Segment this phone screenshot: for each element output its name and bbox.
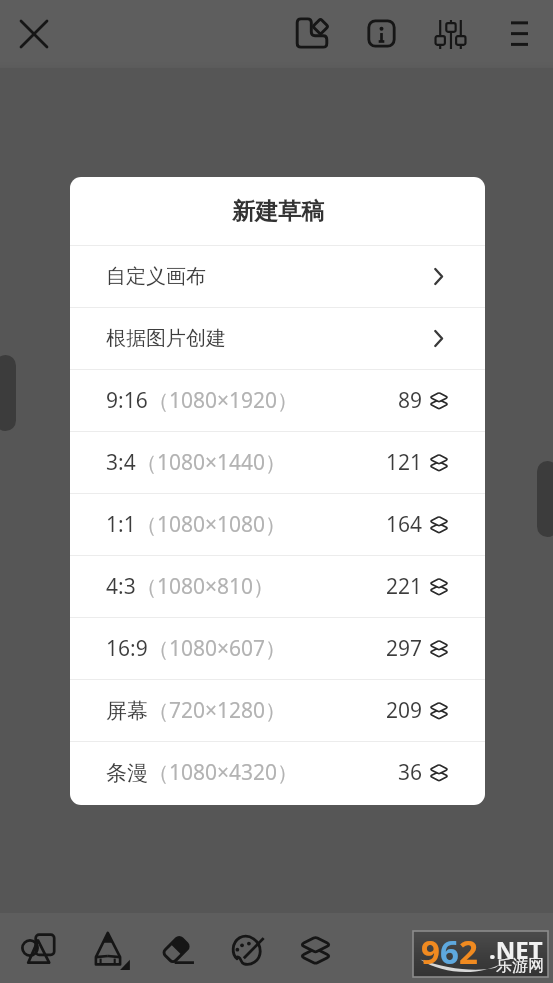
staticText: 条漫 bbox=[106, 760, 148, 786]
button[interactable]: 9:16 bbox=[70, 370, 485, 431]
staticText: 297 bbox=[386, 634, 423, 663]
staticText: 121 bbox=[386, 448, 423, 477]
staticText: （1080×1080） bbox=[136, 510, 287, 539]
staticText: 36 bbox=[398, 758, 423, 787]
staticText: （1080×1920） bbox=[148, 386, 299, 415]
staticText: 164 bbox=[386, 510, 423, 539]
button[interactable]: 屏幕 bbox=[70, 680, 485, 741]
staticText: .NET bbox=[489, 933, 543, 966]
staticText: 1:1 bbox=[106, 510, 136, 539]
button[interactable]: 1:1 bbox=[70, 494, 485, 555]
staticText: 9 bbox=[421, 929, 440, 974]
button[interactable]: 16:9 bbox=[70, 618, 485, 679]
button[interactable]: 条漫 bbox=[70, 742, 485, 803]
button[interactable]: Shapes bbox=[9, 917, 67, 981]
staticText: （1080×607） bbox=[148, 634, 287, 663]
staticText: （720×1280） bbox=[148, 696, 287, 725]
staticText: （1080×810） bbox=[136, 572, 275, 601]
staticText: （1080×4320） bbox=[148, 758, 299, 787]
staticText: 16:9 bbox=[106, 634, 148, 663]
staticText: 根据图片创建 bbox=[106, 326, 226, 351]
button[interactable]: 根据图片创建 bbox=[70, 308, 485, 369]
button[interactable]: 3:4 bbox=[70, 432, 485, 493]
staticText: 新建草稿 bbox=[232, 197, 324, 226]
button[interactable]: Layers bbox=[286, 918, 344, 982]
staticText: 自定义画布 bbox=[106, 264, 206, 289]
staticText: 9:16 bbox=[106, 386, 148, 415]
staticText: 221 bbox=[386, 572, 423, 601]
button[interactable]: Palette bbox=[217, 918, 275, 982]
button[interactable]: 4:3 bbox=[70, 556, 485, 617]
button[interactable]: Add layer bbox=[288, 9, 336, 57]
button[interactable]: Adjust bbox=[426, 10, 474, 58]
button[interactable]: Info bbox=[357, 9, 405, 57]
button[interactable]: 自定义画布 bbox=[70, 246, 485, 307]
staticText: 89 bbox=[398, 386, 423, 415]
button[interactable]: Brush bbox=[84, 919, 142, 983]
staticText: 乐游网 bbox=[496, 956, 544, 976]
staticText: 6 bbox=[440, 929, 459, 974]
button[interactable]: Menu bbox=[495, 10, 543, 58]
button[interactable]: Eraser bbox=[148, 917, 206, 981]
staticText: （1080×1440） bbox=[136, 448, 287, 477]
button[interactable]: Close bbox=[12, 12, 55, 55]
staticText: 屏幕 bbox=[106, 698, 148, 724]
staticText: 2 bbox=[459, 929, 478, 974]
staticText: 4:3 bbox=[106, 572, 136, 601]
staticText: 3:4 bbox=[106, 448, 136, 477]
staticText: 209 bbox=[386, 696, 423, 725]
